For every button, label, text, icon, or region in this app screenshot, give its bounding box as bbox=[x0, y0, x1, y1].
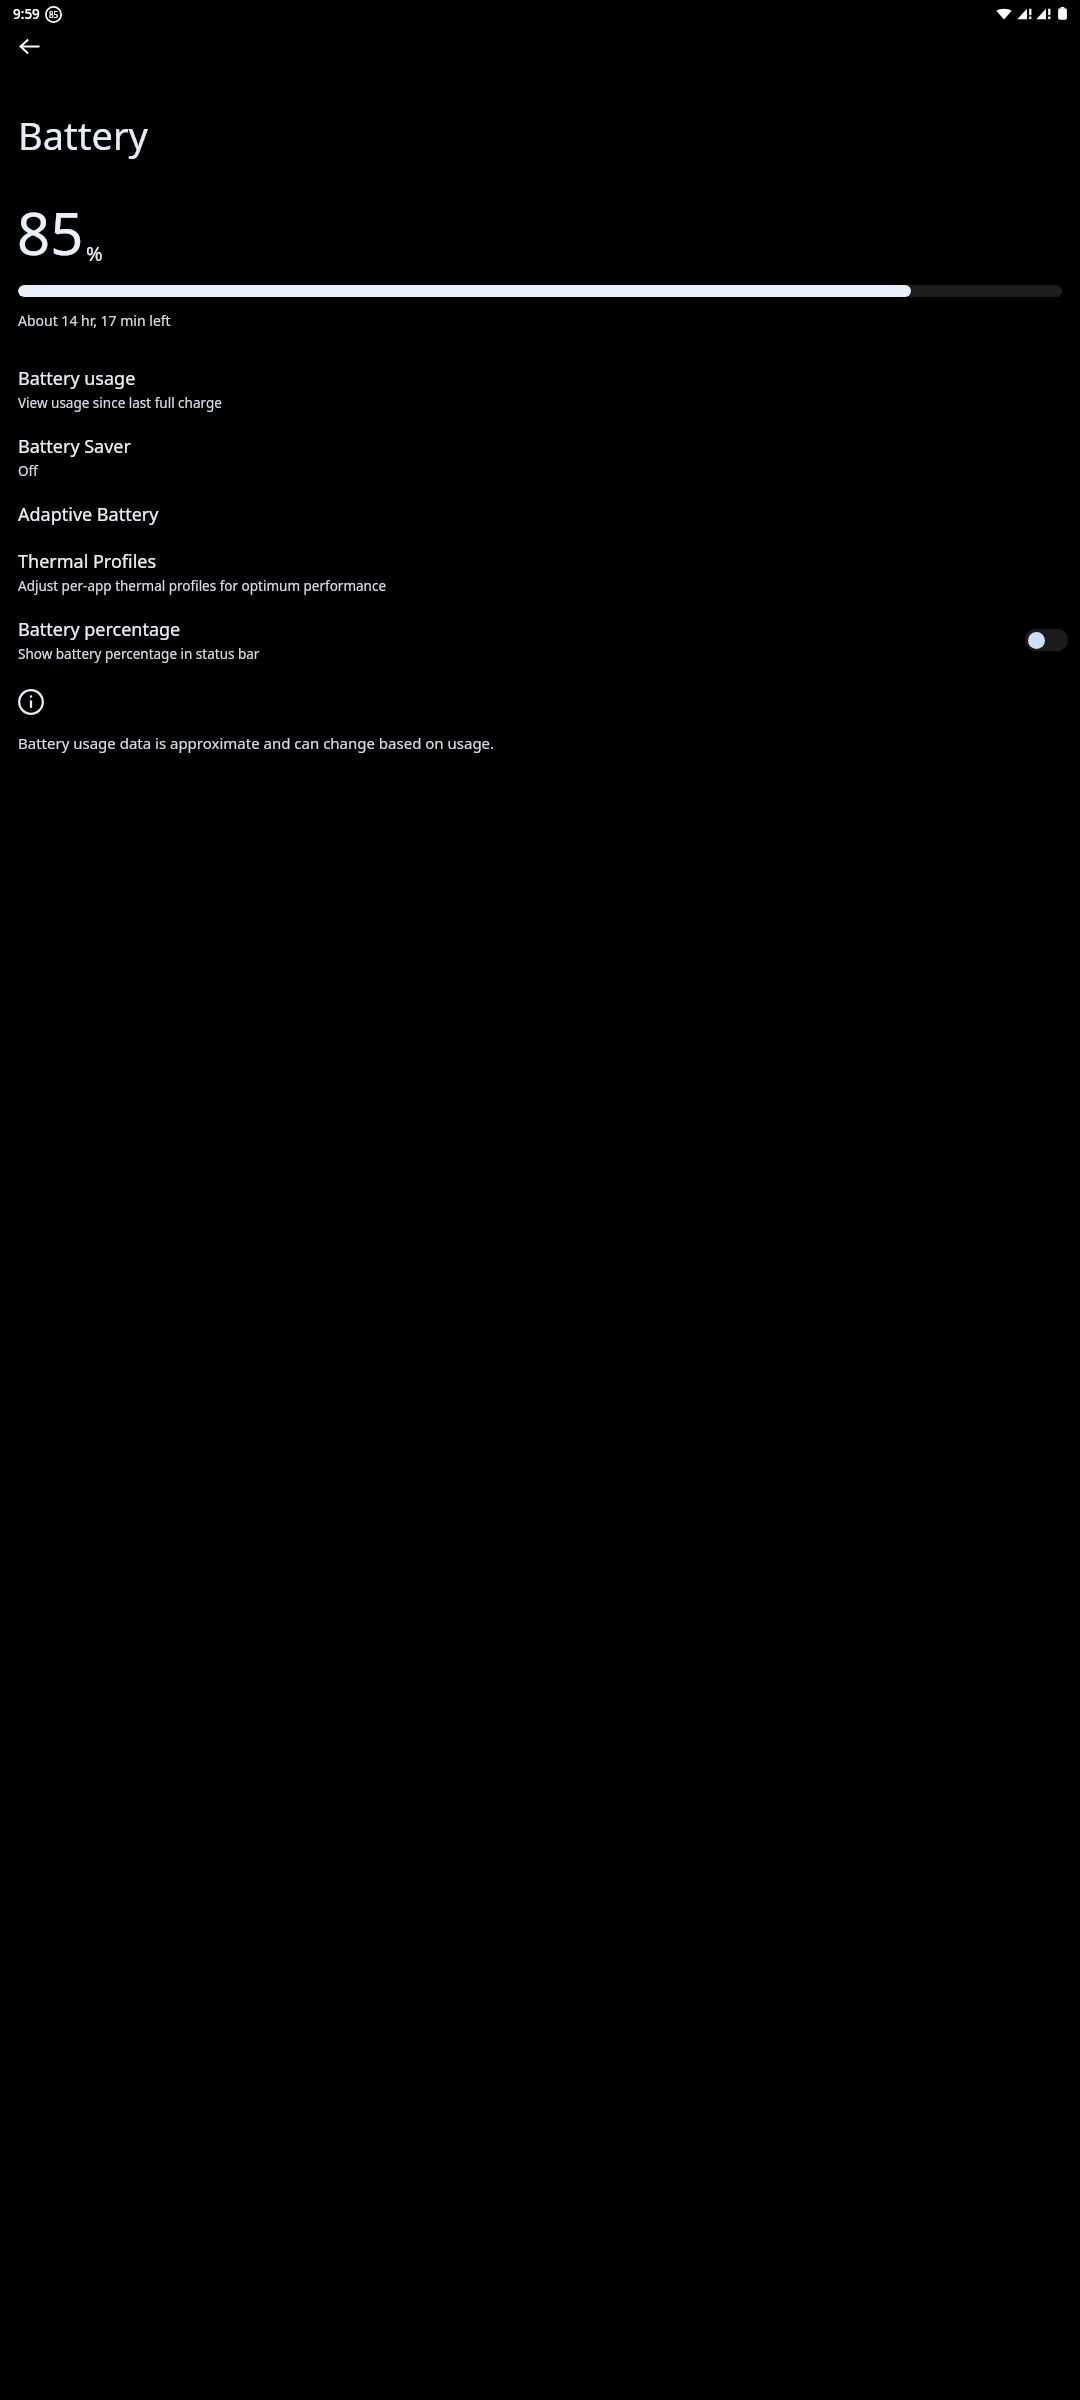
staticText: Adjust per-app thermal profiles for opti… bbox=[18, 577, 387, 595]
staticText: About 14 hr, 17 min left bbox=[18, 311, 171, 330]
staticText: % bbox=[86, 240, 103, 267]
staticText: 85 bbox=[17, 193, 84, 272]
staticText: Thermal Profiles bbox=[18, 549, 157, 574]
staticText: View usage since last full charge bbox=[18, 394, 222, 412]
button[interactable]: Battery percentage bbox=[0, 606, 1080, 674]
staticText: Adaptive Battery bbox=[18, 502, 159, 527]
staticText: Battery usage bbox=[18, 366, 136, 391]
button[interactable]: Thermal Profiles bbox=[0, 538, 1080, 606]
staticText: Battery percentage bbox=[18, 617, 181, 642]
button[interactable]: Battery usage bbox=[0, 355, 1080, 423]
staticText: Battery bbox=[18, 109, 148, 161]
staticText: Show battery percentage in status bar bbox=[18, 645, 260, 663]
staticText: 85 bbox=[49, 9, 59, 20]
staticText: Battery Saver bbox=[18, 434, 131, 459]
staticText: 9:59 bbox=[13, 5, 40, 23]
button[interactable]: Adaptive Battery bbox=[0, 491, 1080, 538]
staticText: Off bbox=[18, 462, 38, 480]
staticText: Battery usage data is approximate and ca… bbox=[18, 733, 495, 753]
button[interactable]: Battery percentage toggle bbox=[1025, 629, 1068, 651]
button[interactable]: Battery Saver bbox=[0, 423, 1080, 491]
button[interactable]: Back bbox=[9, 27, 49, 65]
